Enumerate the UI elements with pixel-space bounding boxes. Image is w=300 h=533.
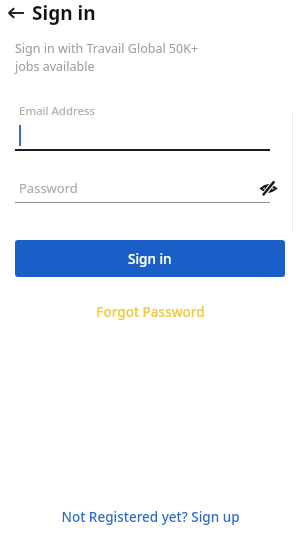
staticText: Sign in	[32, 0, 96, 26]
button[interactable]: Not Registered yet? Sign up	[0, 501, 300, 533]
button[interactable]: Show password	[254, 174, 282, 202]
staticText: Forgot Password	[96, 303, 205, 321]
staticText: Sign in with Travail Global 50K+ jobs av…	[15, 40, 199, 75]
button[interactable]: Sign in	[15, 240, 285, 277]
staticText: Email Address	[19, 103, 96, 119]
staticText: Not Registered yet? Sign up	[61, 508, 240, 526]
button[interactable]: Email Address	[15, 103, 270, 151]
button[interactable]: Forgot Password	[0, 300, 300, 324]
staticText: Password	[19, 179, 78, 197]
staticText: Sign in	[128, 250, 172, 268]
button[interactable]: Back	[0, 0, 32, 26]
button[interactable]: Password	[15, 176, 270, 203]
